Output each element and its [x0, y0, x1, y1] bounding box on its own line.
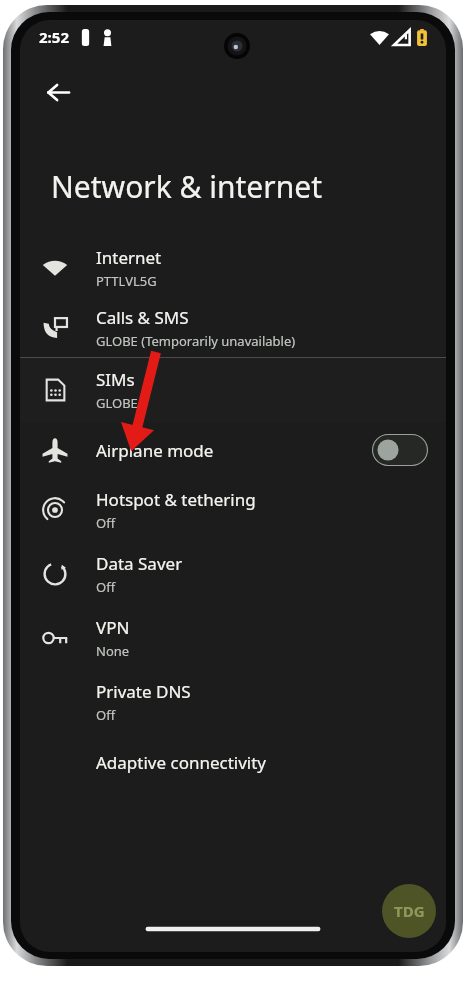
button[interactable]: SIMs	[20, 358, 446, 422]
button[interactable]: Hotspot & tethering	[20, 478, 446, 542]
staticText: Calls & SMS	[96, 306, 189, 329]
staticText: Data Saver	[96, 552, 183, 575]
staticText: GLOBE	[96, 394, 138, 412]
button[interactable]: Private DNS	[20, 670, 446, 734]
button[interactable]: Calls & SMS	[20, 299, 446, 357]
button[interactable]: Internet	[20, 237, 446, 299]
staticText: None	[96, 642, 130, 660]
staticText: Adaptive connectivity	[96, 751, 267, 774]
staticText: Off	[96, 514, 116, 532]
button[interactable]: Airplane mode	[20, 422, 446, 478]
staticText: VPN	[96, 616, 130, 639]
staticText: Off	[96, 578, 116, 596]
button[interactable]: Data Saver	[20, 542, 446, 606]
button[interactable]: Airplane mode toggle	[372, 434, 428, 466]
button[interactable]: Back	[36, 70, 80, 114]
staticText: Airplane mode	[96, 439, 214, 462]
staticText: Private DNS	[96, 680, 191, 703]
button[interactable]: Adaptive connectivity	[20, 734, 446, 790]
staticText: Off	[96, 706, 116, 724]
button[interactable]: VPN	[20, 606, 446, 670]
staticText: SIMs	[96, 368, 135, 391]
staticText: PTTLVL5G	[96, 272, 157, 290]
staticText: TDG	[394, 901, 425, 921]
staticText: GLOBE (Temporarily unavailable)	[96, 332, 296, 350]
staticText: 2:52	[39, 27, 69, 47]
staticText: Internet	[96, 246, 162, 269]
staticText: Network & internet	[51, 166, 322, 207]
staticText: Hotspot & tethering	[96, 488, 256, 511]
